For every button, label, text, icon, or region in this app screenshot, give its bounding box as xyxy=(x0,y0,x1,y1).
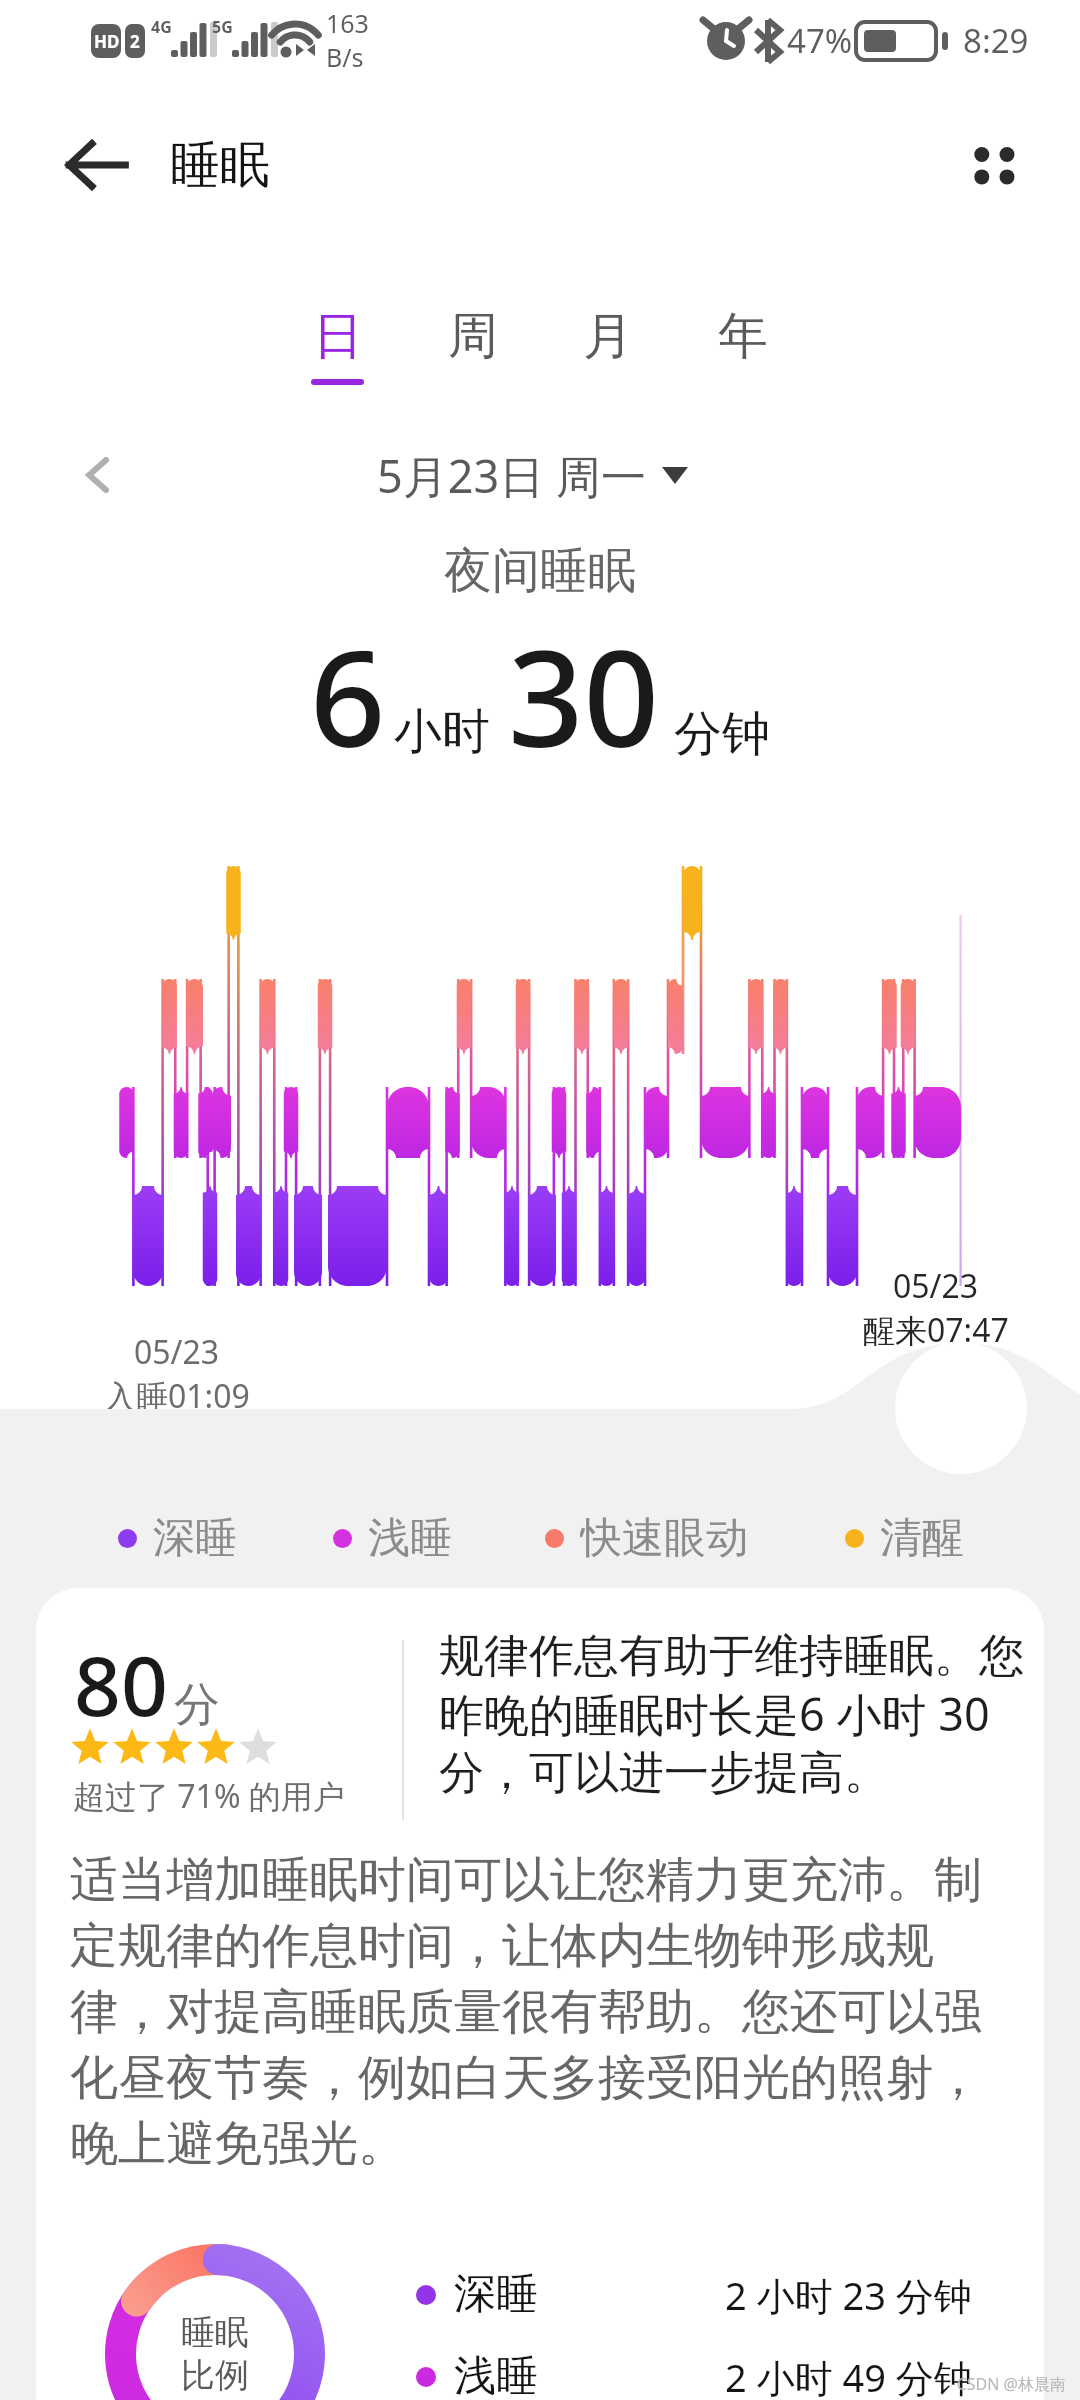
staticText: 入睡01:09 xyxy=(104,1374,250,1418)
staticText: 2 小时 23 分钟 xyxy=(725,2269,972,2321)
button[interactable]: 深睡 xyxy=(118,1512,237,1564)
staticText: 4G xyxy=(151,16,172,38)
staticText: 6 xyxy=(310,606,386,786)
staticText: HD xyxy=(94,30,120,53)
staticText: 分钟 xyxy=(674,704,770,764)
staticText: 30 xyxy=(508,606,660,786)
staticText: 分 xyxy=(174,1676,220,1734)
staticText: 月 xyxy=(583,305,633,368)
staticText: 清醒 xyxy=(880,1512,964,1564)
button[interactable]: 月 xyxy=(540,305,675,405)
button[interactable]: More options xyxy=(958,130,1028,200)
staticText: 80 xyxy=(74,1628,168,1740)
staticText: 日 xyxy=(313,305,363,368)
button[interactable]: Back xyxy=(60,127,136,203)
staticText: 年 xyxy=(718,305,768,368)
staticText: B/s xyxy=(326,40,364,74)
staticText: 8:29 xyxy=(963,18,1029,63)
staticText: 比例 xyxy=(181,2354,249,2397)
staticText: 适当增加睡眠时间可以让您精力更充沛。制定规律的作息时间，让体内生物钟形成规律，对… xyxy=(70,1850,990,2175)
button[interactable]: 周 xyxy=(405,305,540,405)
staticText: 周 xyxy=(448,305,498,368)
button[interactable]: 浅睡 xyxy=(333,1512,452,1564)
button[interactable]: 清醒 xyxy=(845,1512,964,1564)
staticText: 2 xyxy=(130,30,140,53)
staticText: 浅睡 xyxy=(454,2350,538,2400)
staticText: 睡眠 xyxy=(181,2311,249,2354)
staticText: 醒来07:47 xyxy=(863,1308,1009,1352)
staticText: 47% xyxy=(787,18,853,63)
button[interactable]: 日 xyxy=(270,305,405,405)
staticText: CSDN @林晨南 xyxy=(864,2373,1066,2395)
staticText: 深睡 xyxy=(454,2268,538,2321)
staticText: 05/23 xyxy=(134,1330,220,1374)
button[interactable]: 快速眼动 xyxy=(545,1512,748,1564)
staticText: 快速眼动 xyxy=(580,1512,748,1564)
staticText: 超过了 71% 的用户 xyxy=(73,1774,345,1818)
staticText: 浅睡 xyxy=(368,1512,452,1564)
button[interactable]: 80 xyxy=(36,1588,1044,2400)
staticText: 夜间睡眠 xyxy=(444,541,636,601)
staticText: 规律作息有助于维持睡眠。您昨晚的睡眠时长是6 小时 30 分，可以进一步提高。 xyxy=(439,1628,1031,1801)
staticText: 5月23日 周一 xyxy=(377,445,646,506)
staticText: 睡眠 xyxy=(170,134,270,197)
button[interactable]: 年 xyxy=(675,305,810,405)
staticText: 小时 xyxy=(394,702,490,762)
staticText: 深睡 xyxy=(153,1512,237,1564)
staticText: 05/23 xyxy=(893,1264,979,1308)
staticText: 163 xyxy=(326,6,369,40)
staticText: 2 小时 49 分钟 xyxy=(725,2351,972,2400)
button[interactable]: 5月23日 周一 xyxy=(377,445,688,506)
button[interactable]: Previous day xyxy=(70,445,130,505)
staticText: 5G xyxy=(212,16,233,38)
